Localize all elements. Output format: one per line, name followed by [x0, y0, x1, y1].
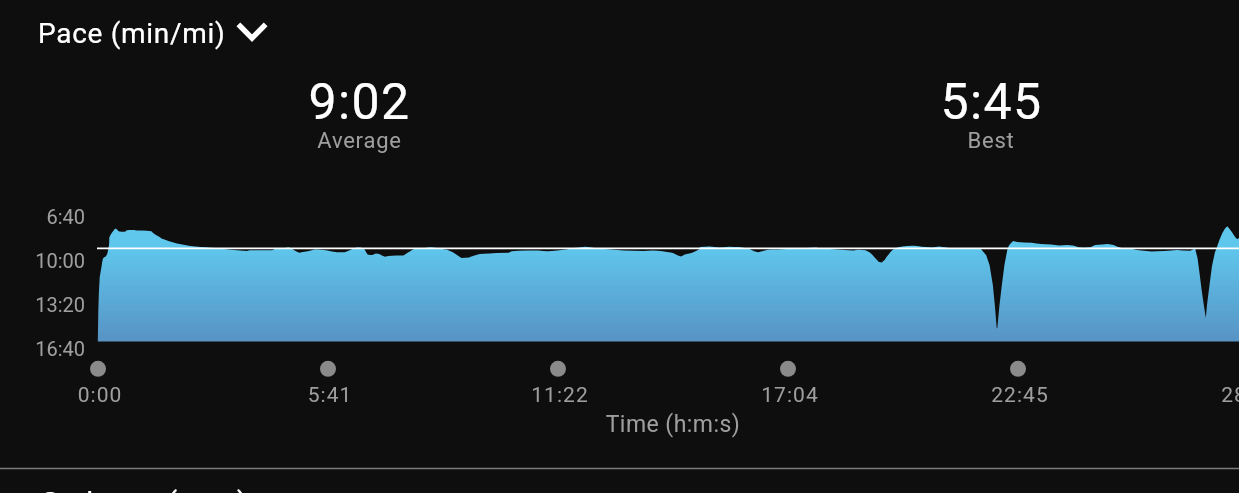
staticText: Time (h:m:s)	[513, 411, 833, 438]
other: Change metric	[226, 13, 278, 53]
staticText: Pace (min/mi)	[38, 17, 226, 50]
staticText: 17:04	[680, 383, 900, 408]
staticText: Best	[967, 128, 1015, 154]
staticText: 11:22	[450, 383, 670, 408]
button[interactable]: Cadence (spm)	[28, 483, 300, 493]
staticText: 10:00	[0, 249, 85, 272]
staticText: 5:45	[940, 73, 1043, 132]
staticText: 0:00	[0, 383, 210, 408]
staticText: 28:26	[1140, 383, 1239, 408]
staticText: 13:20	[0, 293, 85, 316]
staticText: 6:40	[0, 205, 85, 228]
staticText: 9:02	[308, 73, 411, 132]
staticText: Cadence (spm)	[40, 486, 248, 493]
button[interactable]: Pace (min/mi)	[26, 13, 278, 53]
staticText: 5:41	[220, 383, 440, 408]
staticText: 22:45	[910, 383, 1130, 408]
staticText: 16:40	[0, 337, 85, 360]
staticText: Average	[317, 128, 402, 154]
button[interactable]: 5:45	[831, 73, 1151, 158]
button[interactable]: 9:02	[199, 73, 519, 158]
